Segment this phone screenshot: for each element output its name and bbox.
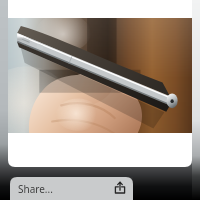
button[interactable]: Photo — [8, 0, 192, 167]
button[interactable]: Share — [10, 177, 133, 200]
staticText: Share... — [18, 182, 53, 196]
